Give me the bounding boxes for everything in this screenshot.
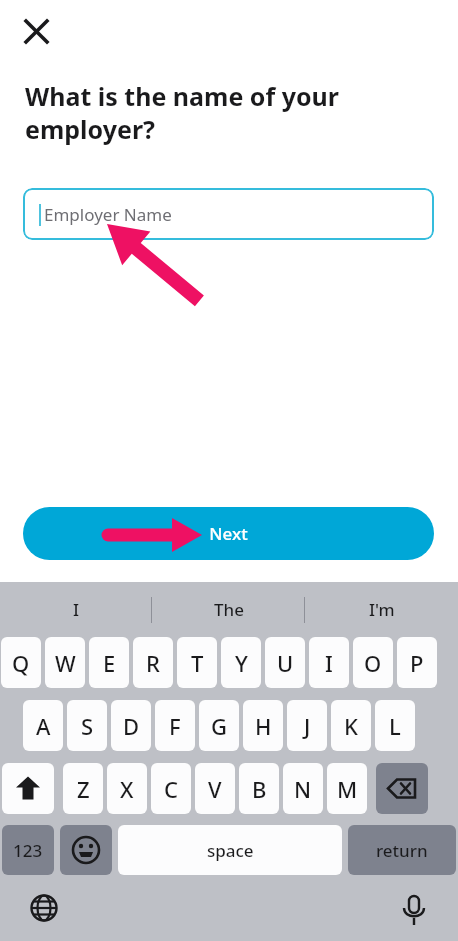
staticText: B [252,774,267,804]
button[interactable]: The [152,582,305,637]
staticText: H [255,711,272,741]
staticText: V [208,774,222,804]
button[interactable]: U [265,637,305,688]
button[interactable]: Next [23,507,434,560]
staticText: U [277,648,294,678]
button[interactable]: Z [63,763,103,814]
staticText: N [294,774,312,804]
button[interactable]: I [0,582,152,637]
button[interactable]: B [239,763,279,814]
button[interactable]: Q [1,637,41,688]
staticText: return [376,839,428,862]
staticText: A [36,711,51,741]
button[interactable]: space [118,825,342,875]
staticText: 123 [13,839,43,862]
button[interactable]: P [397,637,437,688]
button[interactable]: M [327,763,367,814]
button[interactable]: H [243,700,283,751]
staticText: I [73,598,80,621]
staticText: O [364,648,382,678]
button[interactable]: Shift [2,763,54,814]
button[interactable]: F [155,700,195,751]
staticText: K [344,711,358,741]
staticText: The [214,598,244,621]
staticText: F [169,711,181,741]
staticText: E [103,648,116,678]
button[interactable]: I'm [305,582,458,637]
button[interactable]: Emoji [60,825,112,875]
staticText: M [337,774,358,804]
staticText: J [304,711,311,741]
button[interactable]: K [331,700,371,751]
staticText: S [81,711,94,741]
staticText: Employer Name [44,203,172,226]
button[interactable]: J [287,700,327,751]
staticText: X [120,774,134,804]
button[interactable]: R [133,637,173,688]
button[interactable]: A [23,700,63,751]
staticText: P [410,648,424,678]
staticText: R [146,648,160,678]
button[interactable]: Close [18,13,54,49]
button[interactable]: O [353,637,393,688]
staticText: space [207,839,254,862]
staticText: Z [77,774,90,804]
button[interactable]: S [67,700,107,751]
button[interactable]: D [111,700,151,751]
button[interactable]: V [195,763,235,814]
staticText: D [123,711,140,741]
staticText: W [55,648,76,678]
button[interactable]: X [107,763,147,814]
staticText: I [325,648,333,678]
button[interactable]: I [309,637,349,688]
staticText: What is the name of your employer? [25,79,375,146]
staticText: Q [12,648,30,678]
staticText: Y [235,648,248,678]
staticText: C [164,774,178,804]
staticText: G [211,711,227,741]
button[interactable]: W [45,637,85,688]
button[interactable]: T [177,637,217,688]
button[interactable]: E [89,637,129,688]
button[interactable]: L [375,700,415,751]
button[interactable]: 123 [2,825,54,875]
button[interactable]: G [199,700,239,751]
button[interactable]: Backspace [376,763,428,814]
button[interactable]: Y [221,637,261,688]
button[interactable]: N [283,763,323,814]
button[interactable]: return [348,825,456,875]
staticText: L [389,711,401,741]
staticText: T [191,648,204,678]
button[interactable]: Dictation [396,890,432,926]
button[interactable]: Change keyboard [26,890,62,926]
button[interactable]: C [151,763,191,814]
button[interactable]: Employer Name [23,188,434,240]
staticText: I'm [369,598,395,621]
staticText: Next [209,522,248,545]
